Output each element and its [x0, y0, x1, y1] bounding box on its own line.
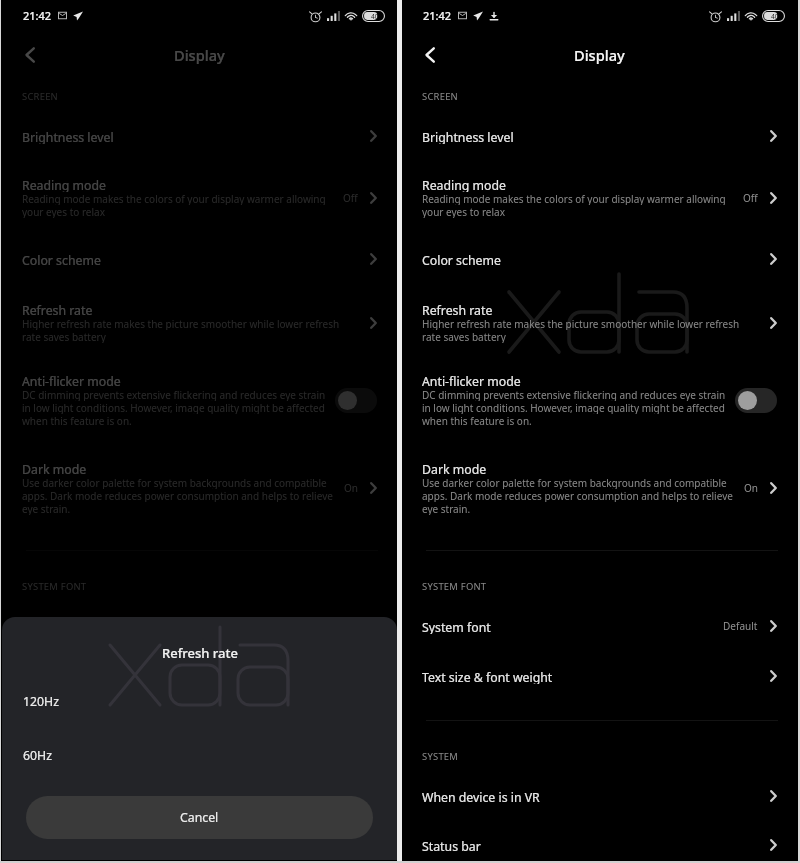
staticText: SYSTEM: [22, 750, 59, 763]
button[interactable]: Dark mode: [402, 438, 797, 537]
staticText: Color scheme: [22, 252, 101, 267]
staticText: Higher refresh rate makes the picture sm…: [422, 317, 740, 330]
staticText: apps. Dark mode reduces power consumptio…: [22, 489, 333, 502]
button[interactable]: Anti-flicker mode: [2, 362, 397, 438]
button[interactable]: When device is in VR: [402, 771, 797, 821]
button[interactable]: Refresh rate: [2, 284, 397, 361]
button[interactable]: Color scheme: [2, 234, 397, 284]
staticText: Dark mode: [422, 461, 487, 476]
staticText: Display: [574, 45, 625, 65]
staticText: your eyes to relax: [22, 205, 105, 218]
button[interactable]: Dark mode: [2, 438, 397, 537]
staticText: 40: [371, 12, 379, 21]
button[interactable]: Status bar: [402, 820, 797, 863]
button[interactable]: Brightness level: [402, 111, 797, 161]
staticText: your eyes to relax: [422, 205, 505, 218]
staticText: Reading mode makes the colors of your di…: [22, 192, 326, 205]
button[interactable]: Color scheme: [402, 234, 797, 284]
staticText: 40: [771, 12, 779, 21]
button[interactable]: Cancel: [26, 796, 373, 839]
staticText: 60Hz: [23, 747, 52, 764]
button[interactable]: Anti-flicker mode: [402, 362, 797, 438]
staticText: eye strain.: [22, 502, 71, 515]
staticText: Display: [174, 45, 225, 65]
staticText: apps. Dark mode reduces power consumptio…: [422, 489, 733, 502]
staticText: Status bar: [422, 838, 481, 853]
staticText: Off: [743, 191, 758, 205]
staticText: Reading mode makes the colors of your di…: [422, 192, 726, 205]
staticText: when this feature is on.: [22, 414, 132, 427]
staticText: Refresh rate: [162, 644, 238, 662]
staticText: SYSTEM: [422, 750, 459, 763]
staticText: Use darker color palette for system back…: [422, 476, 727, 489]
button[interactable]: System font: [2, 601, 397, 651]
staticText: Anti-flicker mode: [422, 373, 521, 388]
staticText: Refresh rate: [22, 302, 93, 317]
staticText: SYSTEM FONT: [422, 580, 487, 593]
staticText: Off: [343, 191, 358, 205]
staticText: Reading mode: [22, 177, 107, 192]
staticText: Reading mode: [422, 177, 507, 192]
staticText: 120Hz: [23, 693, 59, 710]
staticText: Dark mode: [22, 461, 87, 476]
staticText: DC dimming prevents extensive flickering…: [22, 388, 326, 401]
staticText: SCREEN: [22, 90, 59, 103]
staticText: Cancel: [180, 809, 219, 826]
staticText: SCREEN: [422, 90, 459, 103]
staticText: When device is in VR: [422, 789, 540, 804]
button[interactable]: Reading mode: [402, 161, 797, 234]
staticText: Status bar: [22, 838, 81, 853]
staticText: DC dimming prevents extensive flickering…: [422, 388, 726, 401]
staticText: System font: [422, 619, 491, 634]
staticText: rate saves battery: [22, 330, 106, 343]
staticText: On: [344, 481, 358, 495]
staticText: Text size & font weight: [22, 669, 153, 684]
button[interactable]: 60Hz: [2, 735, 397, 775]
staticText: rate saves battery: [422, 330, 506, 343]
button[interactable]: Anti-flicker mode toggle: [735, 388, 777, 413]
staticText: Brightness level: [422, 129, 514, 144]
button[interactable]: When device is in VR: [2, 771, 397, 821]
staticText: Higher refresh rate makes the picture sm…: [22, 317, 340, 330]
button[interactable]: Refresh rate: [402, 284, 797, 361]
staticText: in low light conditions. However, image …: [22, 401, 325, 414]
staticText: On: [744, 481, 758, 495]
staticText: Refresh rate: [422, 302, 493, 317]
staticText: Use darker color palette for system back…: [22, 476, 327, 489]
staticText: Default: [723, 619, 758, 633]
staticText: 21:42: [423, 8, 452, 23]
button[interactable]: Status bar: [2, 820, 397, 863]
staticText: Anti-flicker mode: [22, 373, 121, 388]
staticText: Brightness level: [22, 129, 114, 144]
button[interactable]: System font: [402, 601, 797, 651]
button[interactable]: Text size & font weight: [2, 651, 397, 701]
button[interactable]: 120Hz: [2, 681, 397, 721]
staticText: Color scheme: [422, 252, 501, 267]
staticText: When device is in VR: [22, 789, 140, 804]
button[interactable]: Brightness level: [2, 111, 397, 161]
button[interactable]: Anti-flicker mode toggle: [335, 388, 377, 413]
staticText: 21:42: [23, 8, 52, 23]
staticText: Text size & font weight: [422, 669, 553, 684]
button[interactable]: Back: [14, 39, 46, 71]
button[interactable]: Back: [414, 39, 446, 71]
button[interactable]: Reading mode: [2, 161, 397, 234]
button[interactable]: Text size & font weight: [402, 651, 797, 701]
staticText: eye strain.: [422, 502, 471, 515]
staticText: SYSTEM FONT: [22, 580, 87, 593]
staticText: when this feature is on.: [422, 414, 532, 427]
staticText: in low light conditions. However, image …: [422, 401, 725, 414]
